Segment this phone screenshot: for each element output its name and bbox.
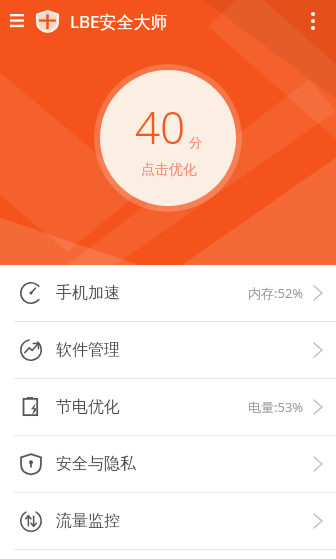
staticText: 分 [189,134,202,150]
button[interactable]: 软件管理 [0,322,336,378]
staticText: 40 [135,97,186,157]
button[interactable]: 40 [94,64,242,212]
button[interactable]: App logo [32,6,62,36]
staticText: 内存:52% [248,284,304,302]
button[interactable]: 安全与隐私 [0,436,336,492]
button[interactable]: Menu [6,10,28,32]
staticText: 安全与隐私 [56,454,136,474]
button[interactable]: 手机加速 [0,265,336,321]
staticText: 电量:53% [248,398,304,416]
staticText: 流量监控 [56,511,120,531]
staticText: LBE安全大师 [70,10,168,33]
staticText: 点击优化 [141,161,197,179]
staticText: 节电优化 [56,397,120,417]
button[interactable]: More options [296,4,330,38]
staticText: 软件管理 [56,340,120,360]
button[interactable]: 流量监控 [0,493,336,549]
staticText: 手机加速 [56,283,120,303]
button[interactable]: 节电优化 [0,379,336,435]
